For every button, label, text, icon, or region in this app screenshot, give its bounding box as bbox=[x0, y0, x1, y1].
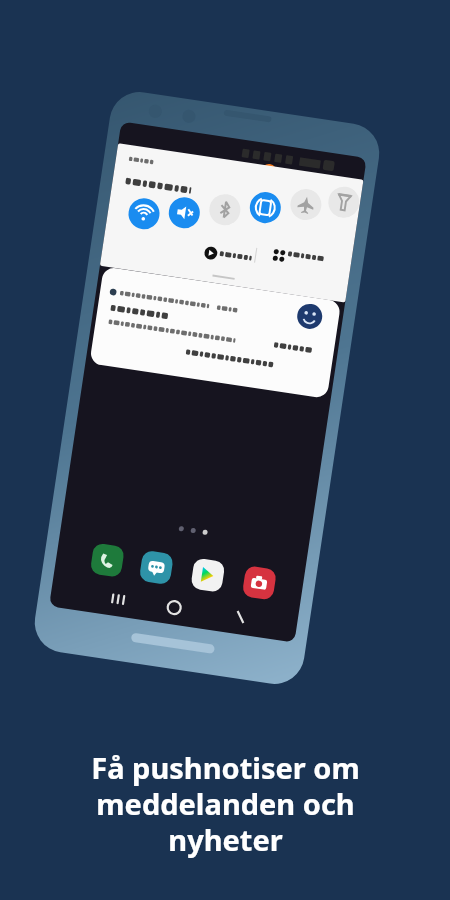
staticText: Få pushnotiser om meddelanden och nyhete… bbox=[91, 748, 360, 860]
button[interactable]: Push notification preview bbox=[30, 90, 380, 680]
